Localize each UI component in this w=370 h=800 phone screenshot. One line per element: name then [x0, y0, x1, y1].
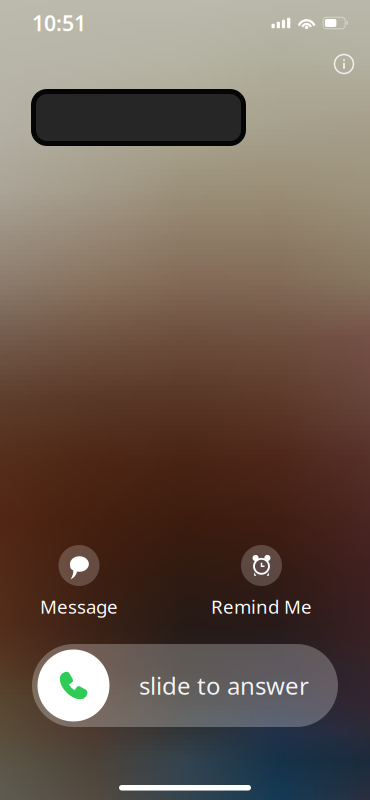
- button[interactable]: Call information: [327, 47, 361, 81]
- staticText: Remind Me: [211, 594, 312, 619]
- staticText: slide to answer: [139, 670, 309, 701]
- button[interactable]: Message: [40, 545, 118, 619]
- staticText: Message: [40, 594, 118, 619]
- button[interactable]: Remind Me: [211, 545, 312, 619]
- button[interactable]: Slide to answer: [32, 644, 338, 727]
- staticText: 10:51: [32, 9, 86, 37]
